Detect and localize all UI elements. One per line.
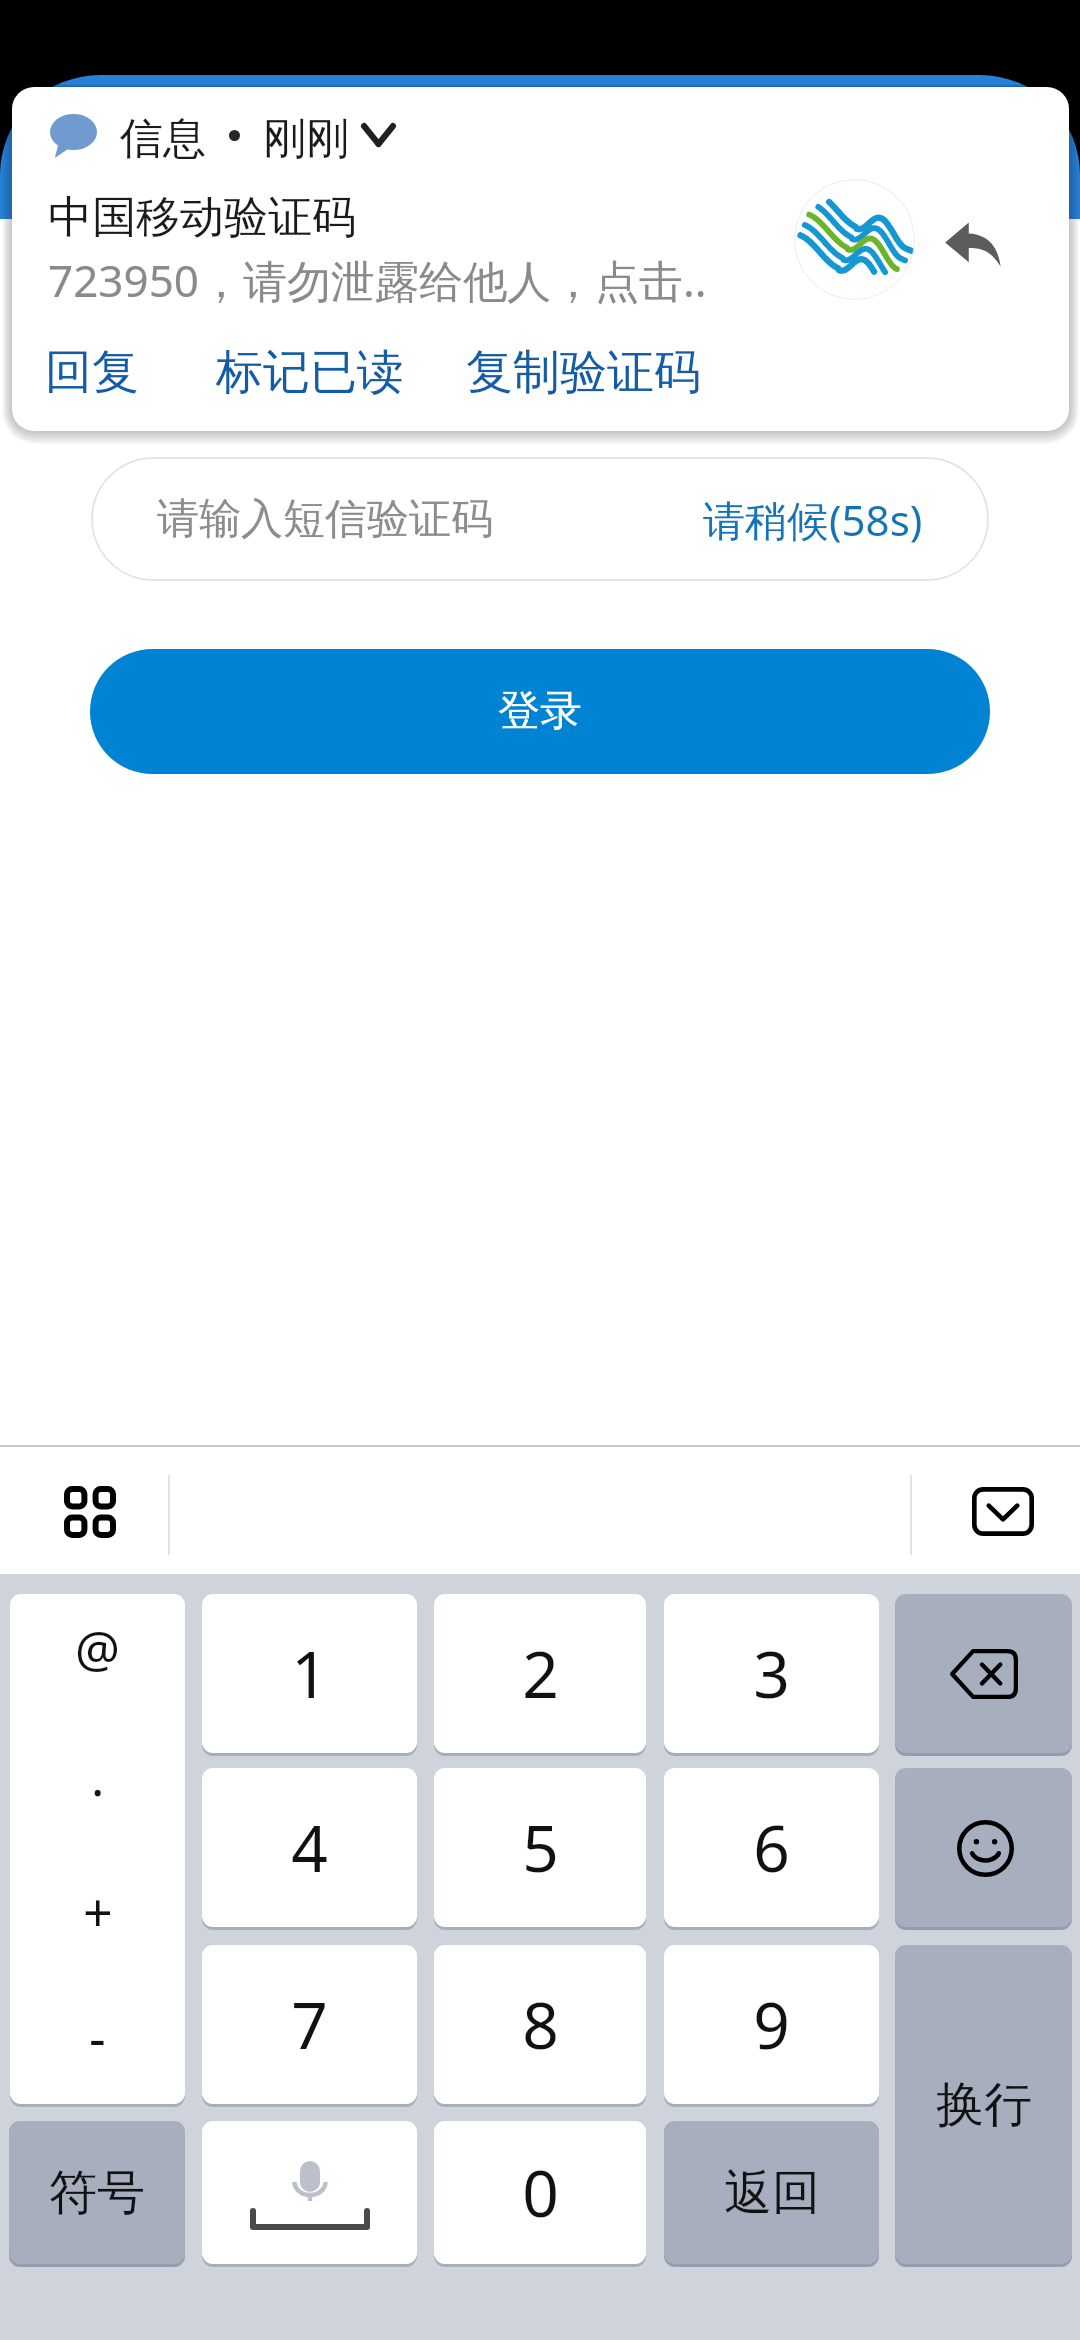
button[interactable]: 复制验证码	[452, 335, 715, 410]
button[interactable]: 键盘切换	[55, 1477, 125, 1547]
staticText: 刚刚	[263, 112, 349, 166]
staticText: -	[89, 2001, 106, 2072]
button[interactable]	[895, 1594, 1072, 1753]
button[interactable]: 换行	[895, 1945, 1072, 2264]
staticText: 723950，请勿泄露给他人，点击..	[48, 250, 707, 310]
staticText: 回复	[45, 343, 139, 402]
staticText: 3	[753, 1630, 790, 1717]
staticText: 4	[291, 1804, 328, 1891]
button[interactable]: 0	[434, 2121, 646, 2264]
staticText: 6	[753, 1804, 790, 1891]
staticText: 符号	[49, 2163, 145, 2223]
staticText: .	[91, 1743, 105, 1811]
staticText: @	[75, 1614, 120, 1682]
button[interactable]: 5	[434, 1768, 646, 1927]
staticText: 信息	[120, 112, 206, 166]
button[interactable]: 1	[202, 1594, 417, 1753]
button[interactable]: 3	[664, 1594, 879, 1753]
staticText: 7	[291, 1981, 328, 2068]
staticText: 8	[522, 1981, 559, 2068]
staticText: 复制验证码	[466, 343, 701, 402]
button[interactable]: 8	[434, 1945, 646, 2104]
button[interactable]: 6	[664, 1768, 879, 1927]
staticText: 0	[522, 2149, 559, 2236]
button[interactable]: 7	[202, 1945, 417, 2104]
button[interactable]: 9	[664, 1945, 879, 2104]
staticText: 请稍候(58s)	[703, 491, 923, 548]
button[interactable]	[202, 2121, 417, 2264]
button[interactable]: 回复	[944, 216, 1003, 271]
staticText: 返回	[724, 2163, 820, 2223]
button[interactable]: @	[10, 1594, 185, 2104]
button[interactable]: 登录	[90, 649, 990, 774]
button[interactable]	[895, 1768, 1072, 1927]
staticText: 1	[291, 1630, 328, 1717]
staticText: 请输入短信验证码	[157, 493, 493, 546]
staticText: 登录	[498, 685, 582, 738]
staticText: 5	[522, 1804, 559, 1891]
button[interactable]: 请输入短信验证码	[91, 457, 989, 581]
staticText: 换行	[936, 2075, 1032, 2135]
button[interactable]: 回复	[31, 335, 153, 410]
staticText: +	[83, 1876, 113, 1947]
button[interactable]: 返回	[664, 2121, 879, 2264]
staticText: 2	[522, 1630, 559, 1717]
button[interactable]: 2	[434, 1594, 646, 1753]
button[interactable]: 4	[202, 1768, 417, 1927]
button[interactable]: 收起键盘	[972, 1487, 1034, 1536]
staticText: 中国移动验证码	[48, 190, 356, 245]
button[interactable]: 符号	[9, 2121, 185, 2264]
staticText: 9	[753, 1981, 790, 2068]
staticText: 标记已读	[216, 343, 404, 402]
button[interactable]: 标记已读	[202, 335, 418, 410]
